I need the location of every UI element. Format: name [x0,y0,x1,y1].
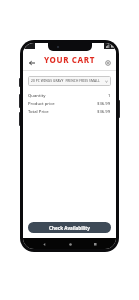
button[interactable]: Quantity [23,92,116,100]
button[interactable]: Home [65,239,75,249]
staticText: Quantity [28,93,108,99]
button[interactable]: Recents [90,239,100,249]
staticText: YOUR CART [44,54,95,65]
button[interactable]: Product price [23,100,116,108]
button[interactable]: Check Availability [28,222,111,233]
button[interactable]: Settings [102,57,113,68]
staticText: 1 [108,93,111,99]
button[interactable]: Total Price [23,108,116,116]
staticText: Product price [28,101,97,107]
button[interactable]: 20 PC WINGS GRAVY FRENCH FRIES SMALL 8oz [28,76,111,86]
staticText: 20 PC WINGS GRAVY FRENCH FRIES SMALL 8oz [31,79,105,83]
staticText: Total Price [28,109,97,115]
staticText: $36.99 [97,109,111,115]
staticText: Check Availability [49,225,90,231]
staticText: $36.99 [97,101,111,107]
button[interactable]: Back [26,57,37,68]
button[interactable]: Back [39,239,49,249]
